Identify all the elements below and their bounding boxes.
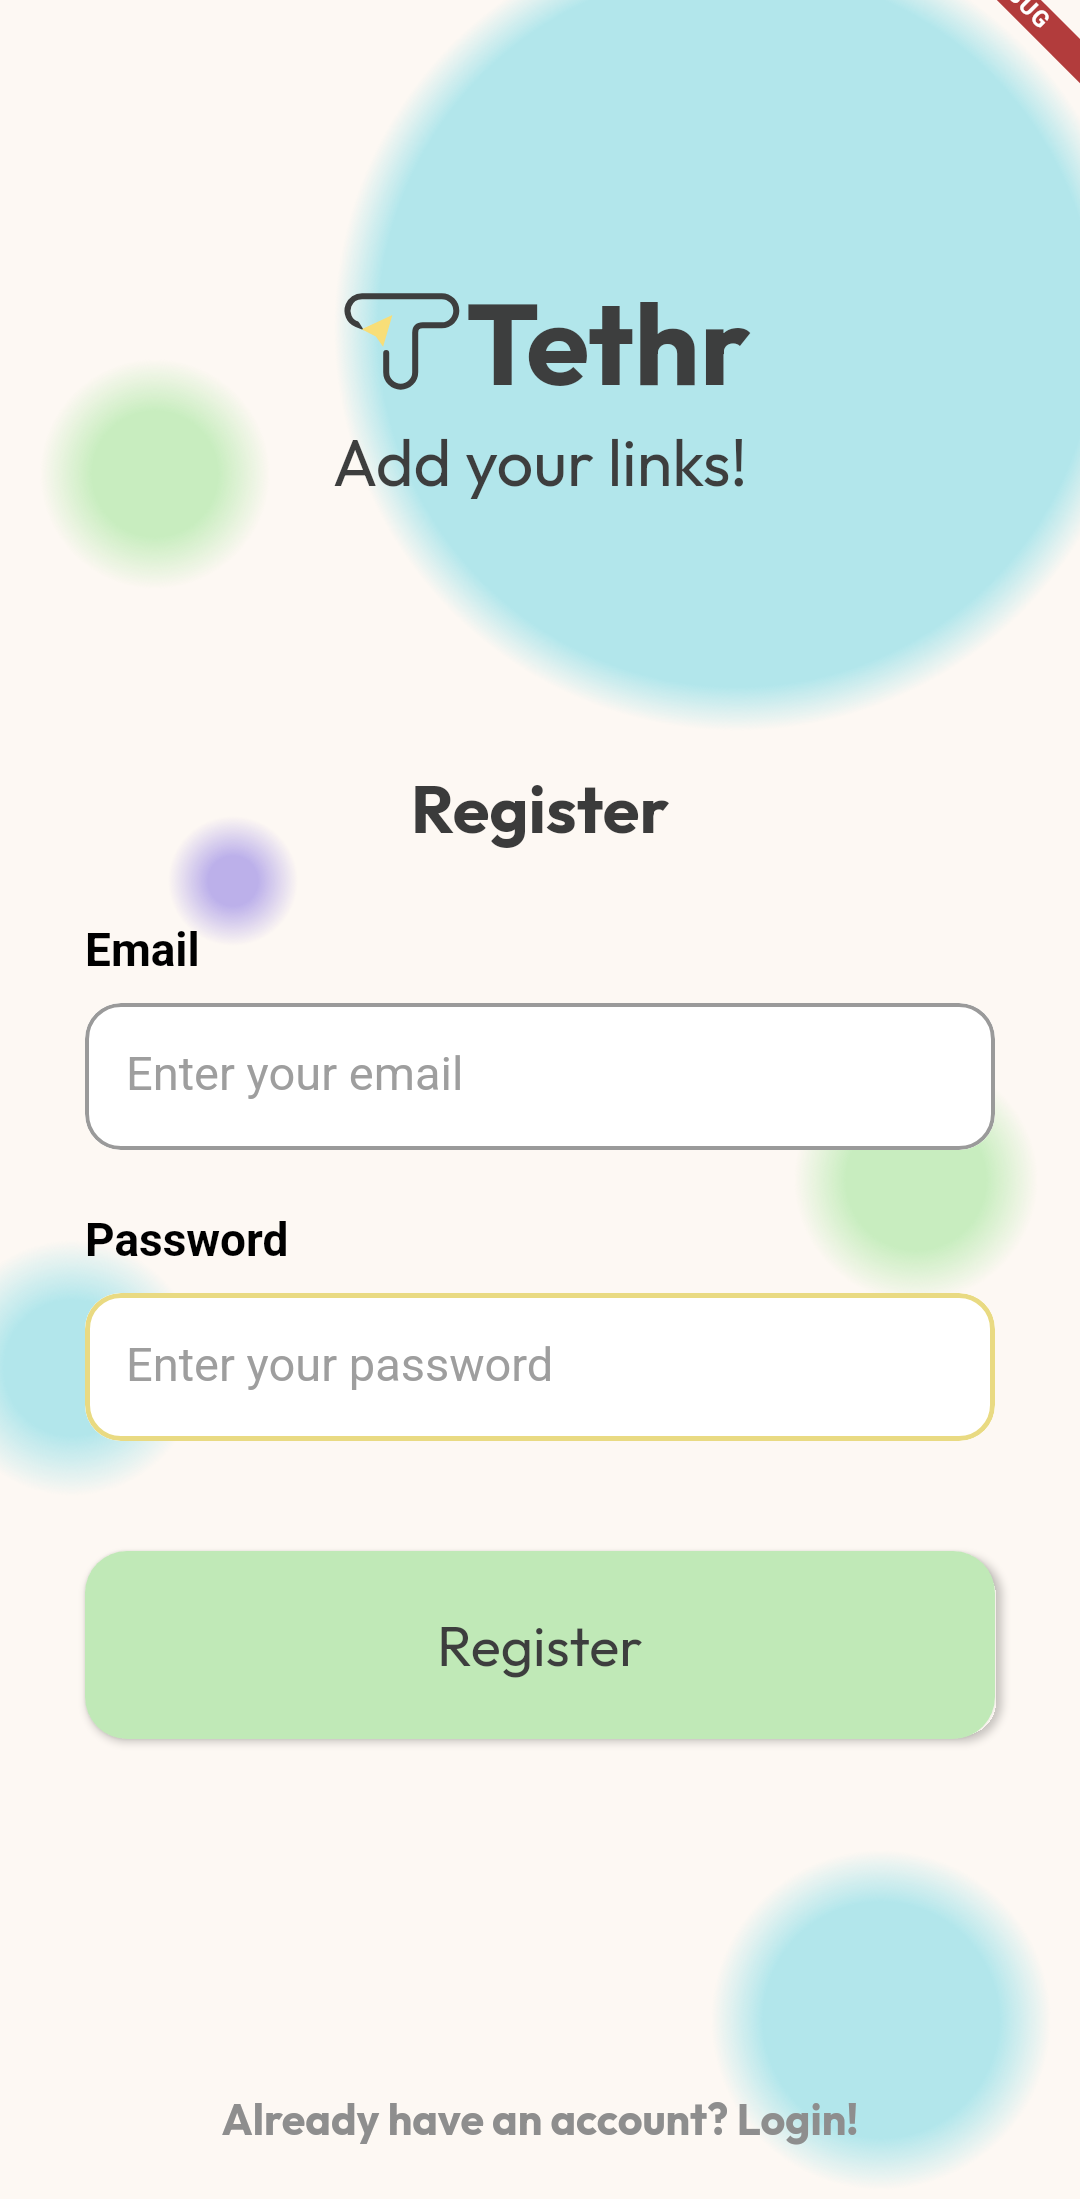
staticText: Password — [85, 1213, 289, 1267]
staticText: Add your links! — [0, 421, 1080, 503]
staticText: Tethr — [466, 270, 751, 415]
staticText: Enter your password — [126, 1337, 554, 1392]
button[interactable]: Enter your password — [85, 1293, 995, 1441]
staticText: Already have an account? Login! — [221, 2092, 859, 2146]
staticText: Register — [0, 766, 1080, 850]
staticText: Email — [85, 923, 200, 977]
staticText: Enter your email — [126, 1046, 464, 1101]
button[interactable]: Register — [85, 1551, 995, 1739]
button[interactable]: Already have an account? Login! — [0, 2092, 1080, 2146]
staticText: Register — [437, 1610, 643, 1681]
button[interactable]: Enter your email — [85, 1003, 995, 1150]
